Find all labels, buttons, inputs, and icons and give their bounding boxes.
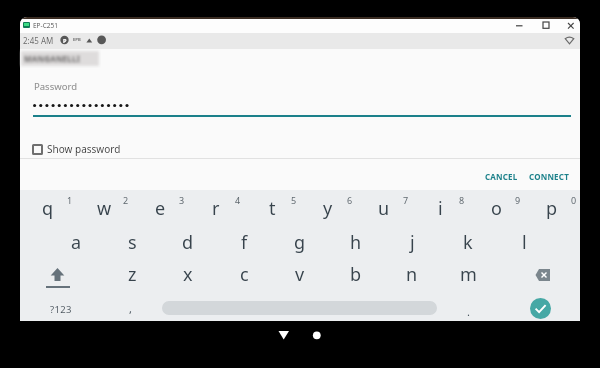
staticText: , (129, 301, 132, 316)
button[interactable]: c (216, 259, 272, 289)
staticText: q (42, 196, 54, 221)
button[interactable] (540, 18, 552, 31)
button[interactable]: z (104, 259, 160, 289)
staticText: Password (34, 80, 77, 93)
staticText: v (295, 262, 305, 287)
button[interactable] (305, 324, 329, 346)
staticText: r (212, 196, 220, 221)
button[interactable]: k (440, 227, 496, 257)
staticText: k (463, 230, 473, 255)
button[interactable]: h (328, 227, 384, 257)
staticText: o (491, 196, 502, 221)
button[interactable]: j (384, 227, 440, 257)
staticText: c (240, 262, 249, 287)
staticText: EP-C251 (33, 21, 58, 30)
button[interactable]: p (524, 193, 580, 223)
staticText: x (183, 262, 193, 287)
button[interactable]: b (328, 259, 384, 289)
button[interactable] (565, 18, 577, 31)
button[interactable]: ?123 (28, 295, 94, 323)
button[interactable]: f (216, 227, 272, 257)
staticText: Show password (47, 142, 121, 156)
button[interactable]: g (272, 227, 328, 257)
staticText: 2 (123, 194, 129, 206)
button[interactable] (33, 95, 571, 117)
button[interactable]: u (356, 193, 412, 223)
button[interactable]: i (412, 193, 468, 223)
button[interactable] (513, 18, 525, 31)
staticText: 7 (403, 194, 409, 206)
staticText: d (182, 230, 194, 255)
button[interactable]: l (496, 227, 552, 257)
staticText: u (378, 196, 390, 221)
button[interactable]: a (48, 227, 104, 257)
staticText: CONNECT (529, 171, 569, 182)
staticText: b (350, 262, 362, 287)
staticText: 2:45 AM (23, 35, 54, 46)
button[interactable]: m (440, 259, 496, 289)
staticText: 9 (515, 194, 521, 206)
staticText: s (128, 230, 137, 255)
staticText: 6 (347, 194, 353, 206)
button[interactable]: e (132, 193, 188, 223)
staticText: h (350, 230, 362, 255)
button[interactable] (28, 140, 128, 158)
staticText: a (71, 230, 82, 255)
staticText: ?123 (50, 303, 72, 316)
staticText: l (522, 230, 527, 255)
button[interactable] (268, 324, 299, 346)
button[interactable]: v (272, 259, 328, 289)
button[interactable]: d (160, 227, 216, 257)
staticText: 5 (291, 194, 297, 206)
staticText: i (438, 196, 443, 221)
staticText: 3 (179, 194, 185, 206)
staticText: m (460, 262, 477, 287)
staticText: 8 (459, 194, 465, 206)
staticText: CANCEL (485, 171, 518, 182)
button[interactable]: , (115, 294, 145, 322)
staticText: g (294, 230, 306, 255)
button[interactable]: o (468, 193, 524, 223)
staticText: t (269, 196, 276, 221)
staticText: 1 (67, 194, 73, 206)
button[interactable]: t (244, 193, 300, 223)
button[interactable] (530, 298, 551, 319)
button[interactable]: r (188, 193, 244, 223)
staticText: 4 (235, 194, 241, 206)
staticText: n (406, 262, 418, 287)
button[interactable]: . (453, 297, 483, 325)
staticText: p (546, 196, 558, 221)
button[interactable]: CONNECT (524, 165, 574, 187)
staticText: . (467, 304, 470, 319)
staticText: P (63, 37, 67, 44)
staticText: 0 (571, 194, 577, 206)
staticText: y (323, 196, 333, 221)
button[interactable]: x (160, 259, 216, 289)
staticText: j (410, 230, 415, 255)
staticText: EPB (73, 37, 81, 43)
button[interactable]: q (20, 193, 76, 223)
staticText: z (128, 262, 137, 287)
button[interactable]: CANCEL (478, 165, 524, 187)
staticText: MANGANELLI (24, 53, 80, 64)
button[interactable] (516, 259, 580, 289)
button[interactable]: y (300, 193, 356, 223)
staticText: w (97, 196, 112, 221)
staticText: f (241, 230, 248, 255)
staticText: e (155, 196, 166, 221)
button[interactable] (20, 259, 90, 289)
button[interactable]: w (76, 193, 132, 223)
button[interactable]: s (104, 227, 160, 257)
button[interactable]: n (384, 259, 440, 289)
